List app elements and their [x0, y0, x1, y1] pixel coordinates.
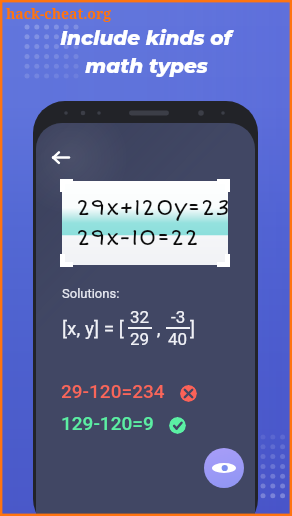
staticText: Include kinds of	[60, 26, 232, 50]
button[interactable]: Incorrect	[180, 385, 197, 402]
button[interactable]: Correct	[169, 417, 186, 434]
staticText: ,	[152, 317, 166, 339]
staticText: math types	[85, 54, 208, 78]
staticText: -3	[171, 307, 186, 327]
button[interactable]: Preview	[204, 448, 244, 488]
staticText: 29x-10=22	[76, 224, 200, 252]
staticText: 40	[168, 329, 188, 349]
staticText: 129-120=9	[61, 412, 154, 434]
staticText: hack-cheat.org	[6, 4, 112, 23]
button[interactable]: Back	[45, 143, 75, 173]
staticText: 29-120=234	[61, 380, 165, 402]
staticText: 29x+120y=23	[76, 194, 231, 222]
staticText: 32	[130, 307, 150, 327]
staticText: [x, y] = [	[62, 317, 124, 339]
staticText: ]	[190, 317, 196, 339]
staticText: 29	[130, 329, 150, 349]
staticText: Solutions:	[62, 286, 120, 301]
